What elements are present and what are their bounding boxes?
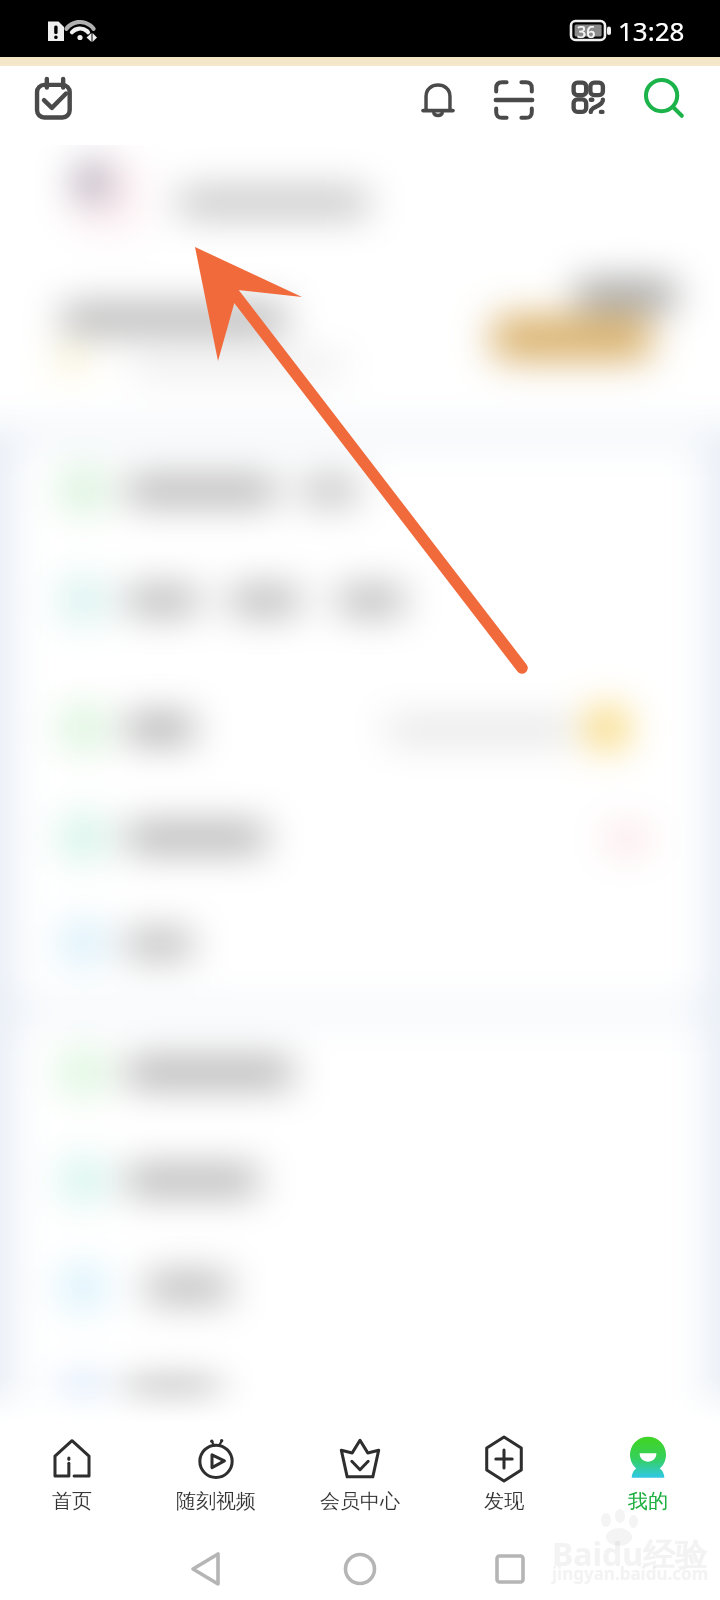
button[interactable]: Notifications: [417, 78, 459, 120]
button[interactable]: 随刻视频: [144, 1422, 288, 1528]
button[interactable]: 我的: [576, 1422, 720, 1528]
button[interactable]: Search: [644, 78, 688, 122]
staticText: 13:28: [618, 13, 685, 48]
button[interactable]: 发现: [432, 1422, 576, 1528]
staticText: jingyan.baidu.com: [552, 1562, 709, 1585]
staticText: 会员中心: [320, 1489, 400, 1514]
staticText: 首页: [52, 1489, 92, 1514]
button[interactable]: Scan: [494, 80, 534, 120]
staticText: 随刻视频: [176, 1489, 256, 1514]
staticText: 发现: [484, 1489, 524, 1514]
staticText: 我的: [628, 1489, 668, 1514]
button[interactable]: Mini programs: [571, 80, 609, 118]
staticText: 36: [577, 21, 596, 43]
button[interactable]: 会员中心: [288, 1422, 432, 1528]
button[interactable]: 首页: [0, 1422, 144, 1528]
staticText: Baidu经验: [552, 1532, 708, 1576]
button[interactable]: Check in calendar: [31, 75, 79, 123]
